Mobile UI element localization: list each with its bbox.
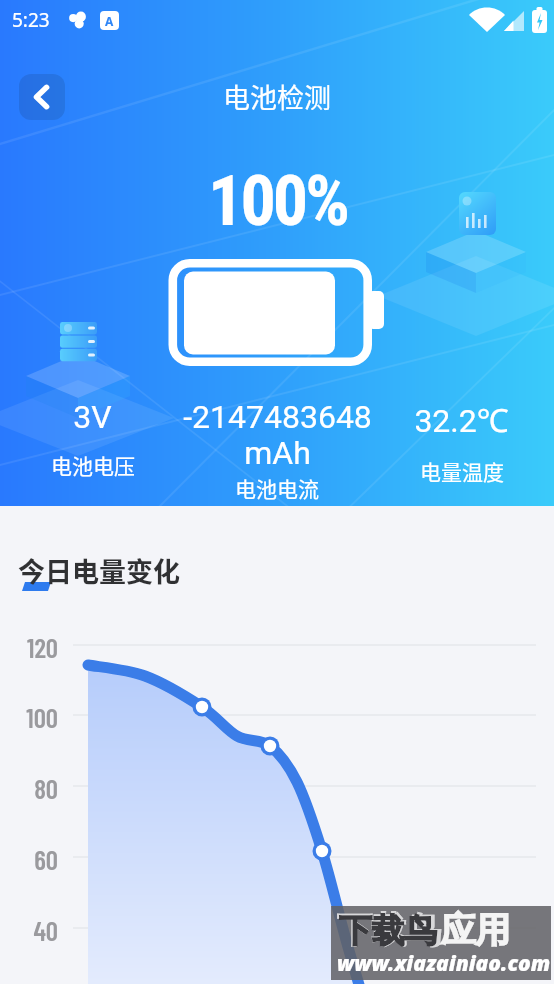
staticText: 60 — [34, 843, 58, 875]
staticText: 5:23 — [12, 7, 50, 33]
staticText: www.xiazainiao.com — [337, 949, 551, 978]
staticText: 电池电流 — [235, 473, 319, 503]
staticText: 下载鸟 — [339, 910, 437, 952]
staticText: 电池电压 — [51, 450, 135, 480]
staticText: 32.2℃ — [414, 398, 509, 442]
button[interactable]: Back — [19, 74, 65, 120]
staticText: 100% — [208, 160, 347, 242]
staticText: 电池检测 — [223, 77, 331, 116]
staticText: 今日电量变化 — [18, 551, 180, 590]
staticText: -2147483648 mAh — [183, 398, 372, 472]
staticText: 100 — [26, 701, 58, 733]
staticText: 80 — [34, 772, 58, 804]
staticText: 120 — [26, 631, 58, 663]
staticText: 3V — [73, 398, 112, 436]
staticText: 应用 — [441, 908, 510, 952]
staticText: 40 — [33, 914, 58, 946]
staticText: A — [105, 13, 114, 29]
staticText: 电量温度 — [420, 456, 504, 486]
staticText: 下载鸟 — [337, 908, 441, 952]
